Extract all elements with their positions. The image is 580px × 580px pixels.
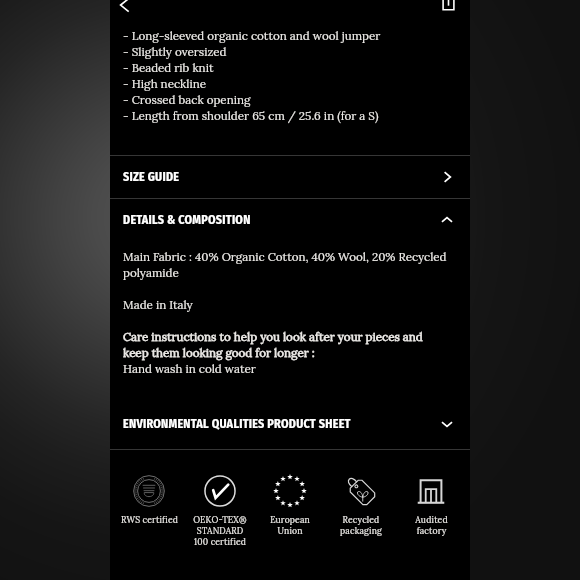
staticText: Audited factory xyxy=(415,514,448,536)
staticText: Recycled packaging xyxy=(340,514,382,536)
button[interactable]: ENVIRONMENTAL QUALITIES PRODUCT SHEET xyxy=(110,403,470,445)
staticText: ENVIRONMENTAL QUALITIES PRODUCT SHEET xyxy=(123,417,351,431)
staticText: European Union xyxy=(270,514,310,536)
button[interactable]: SIZE GUIDE xyxy=(110,156,470,198)
staticText: DETAILS & COMPOSITION xyxy=(123,213,251,227)
staticText: OEKO-TEX® STANDARD 100 certified xyxy=(193,514,247,547)
button[interactable]: Share xyxy=(438,0,468,16)
button[interactable]: Back xyxy=(110,0,140,16)
staticText: RWS certified xyxy=(121,514,178,525)
staticText: - Long-sleeved organic cotton and wool j… xyxy=(123,28,381,123)
button[interactable]: DETAILS & COMPOSITION xyxy=(110,199,470,241)
staticText: SIZE GUIDE xyxy=(123,170,180,184)
staticText: Main Fabric : 40% Organic Cotton, 40% Wo… xyxy=(123,249,447,376)
